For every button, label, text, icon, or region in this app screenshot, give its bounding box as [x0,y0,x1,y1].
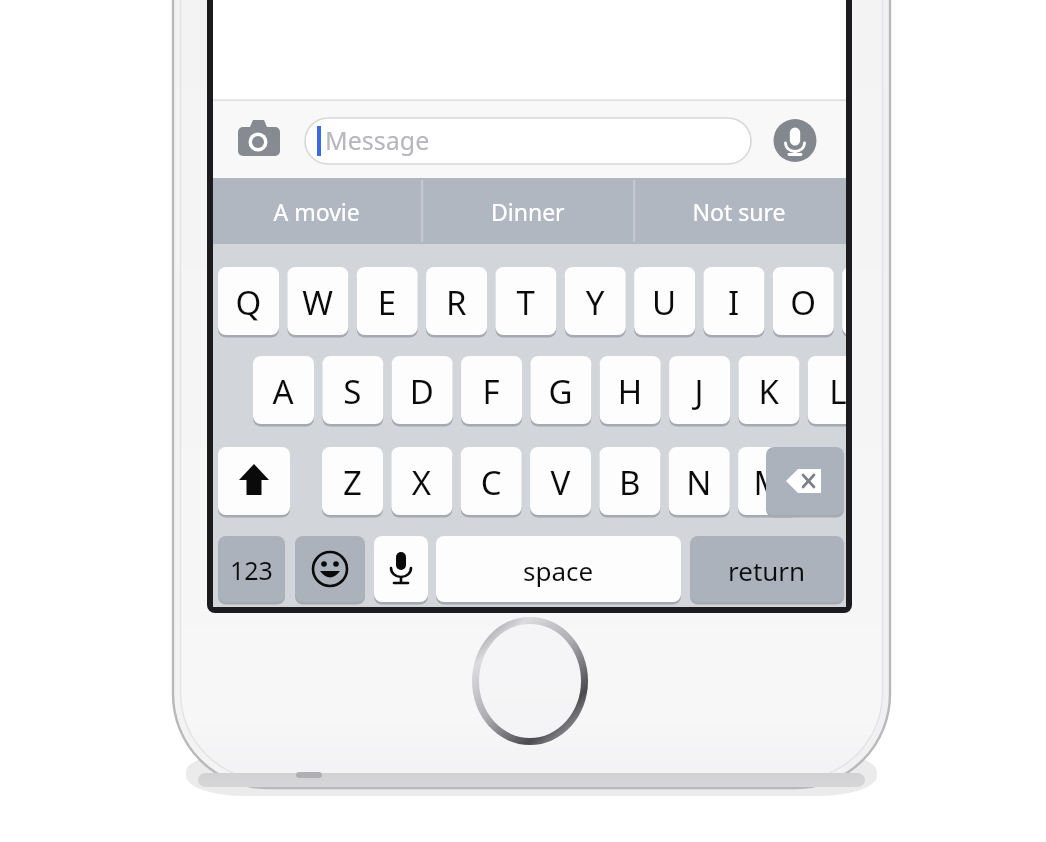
button[interactable]: X [391,447,452,515]
button[interactable]: space [436,536,681,602]
button[interactable]: A movie [213,178,421,244]
button[interactable]: S [322,356,383,424]
button[interactable]: Dinner [423,178,633,244]
button[interactable]: Shift [218,447,290,515]
button[interactable]: Emoji keyboard [295,536,365,602]
button[interactable]: L [808,356,869,424]
button[interactable]: return [690,536,844,602]
button[interactable]: E [357,267,418,335]
button[interactable]: Home button [472,623,588,739]
button[interactable]: R [426,267,487,335]
button[interactable]: C [461,447,522,515]
button[interactable]: Dictation [374,536,428,602]
button[interactable]: Dictate message [772,118,818,163]
button[interactable]: J [669,356,730,424]
button[interactable]: Q [218,267,279,335]
button[interactable]: 123 numbers [218,536,285,602]
button[interactable]: U [634,267,695,335]
button[interactable]: Delete [766,447,844,515]
button[interactable]: H [600,356,661,424]
button[interactable]: B [599,447,660,515]
button[interactable]: A [253,356,314,424]
button[interactable]: G [530,356,591,424]
button[interactable]: Message text field [305,117,751,165]
button[interactable]: T [495,267,556,335]
button[interactable]: Not sure [635,178,846,244]
button[interactable]: I [703,267,764,335]
button[interactable]: N [669,447,730,515]
button[interactable]: P [842,267,903,335]
button[interactable]: F [461,356,522,424]
button[interactable]: K [738,356,799,424]
button[interactable]: W [287,267,348,335]
button[interactable]: Take photo [231,118,288,163]
button[interactable]: Z [322,447,383,515]
button[interactable]: Y [565,267,626,335]
button[interactable]: V [530,447,591,515]
button[interactable]: M [738,447,799,515]
button[interactable]: D [392,356,453,424]
button[interactable]: O [773,267,834,335]
